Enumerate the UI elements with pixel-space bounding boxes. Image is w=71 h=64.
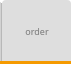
staticText: order [25,25,49,37]
button[interactable]: order [2,0,71,61]
